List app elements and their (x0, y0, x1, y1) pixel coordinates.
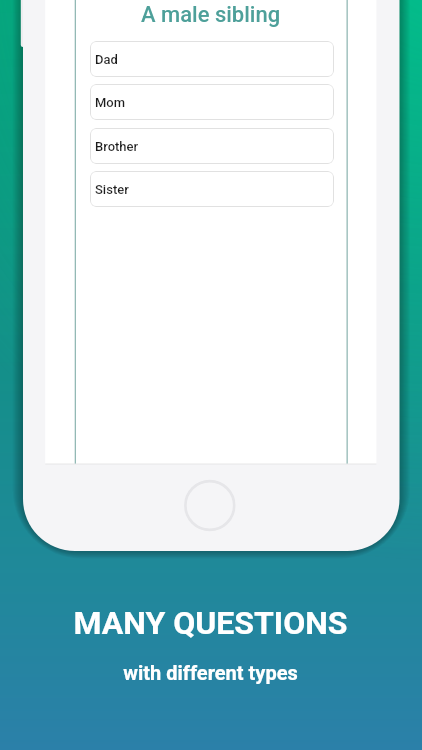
button[interactable]: Sister (90, 171, 334, 207)
staticText: Brother (95, 139, 139, 154)
staticText: MANY QUESTIONS (73, 604, 348, 642)
button[interactable]: Dad (90, 41, 334, 77)
staticText: Sister (95, 182, 129, 197)
staticText: Dad (95, 52, 118, 67)
staticText: A male sibling (141, 2, 281, 28)
staticText: with different types (123, 661, 298, 684)
button[interactable]: Mom (90, 84, 334, 120)
button[interactable]: Brother (90, 128, 334, 164)
staticText: Mom (95, 95, 126, 110)
